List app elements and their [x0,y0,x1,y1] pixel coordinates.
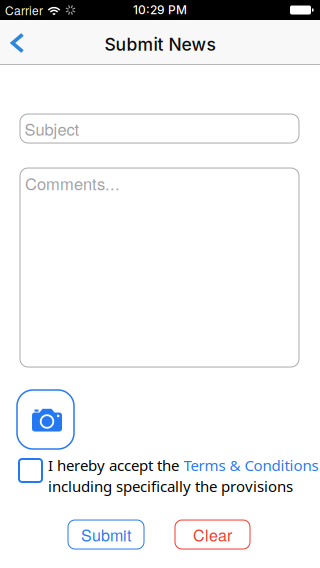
button[interactable]: Clear [175,520,250,549]
staticText: I hereby accept the [48,455,179,475]
staticText: Terms & Conditions [183,455,318,475]
staticText: Submit News [104,34,215,55]
staticText: including specifically the provisions [48,476,293,496]
staticText: 10:29 PM [133,3,187,17]
button[interactable]: Terms & Conditions [183,455,318,475]
staticText: Carrier [5,1,43,19]
staticText: Comments... [25,171,120,195]
button[interactable]: Add Photo [17,390,74,449]
button[interactable]: Submit [68,520,144,549]
staticText: Clear [193,523,232,546]
staticText: Submit [81,523,131,546]
button[interactable]: Back [4,28,30,58]
button[interactable]: Accept Terms & Conditions [19,459,42,482]
staticText: Subject [24,117,79,140]
